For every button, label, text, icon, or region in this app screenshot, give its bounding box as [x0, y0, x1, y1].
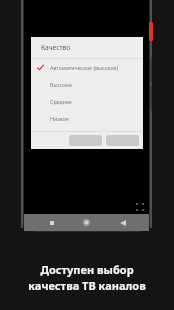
button[interactable]: Автоматическое (высокое): [31, 59, 143, 76]
staticText: Качество: [41, 43, 71, 52]
staticText: Среднее: [50, 98, 72, 105]
button[interactable]: Back: [114, 214, 131, 231]
button[interactable]: Высокое: [31, 76, 143, 93]
staticText: Высокое: [50, 81, 72, 88]
button[interactable]: Среднее: [31, 93, 143, 110]
staticText: Автоматическое (высокое): [50, 64, 119, 71]
staticText: Низкое: [50, 115, 69, 122]
staticText: качества ТВ каналов: [28, 278, 146, 293]
button[interactable]: Home: [78, 214, 95, 231]
button[interactable]: Recents: [43, 214, 60, 231]
button[interactable]: Низкое: [31, 110, 143, 127]
staticText: Доступен выбор: [40, 262, 134, 277]
